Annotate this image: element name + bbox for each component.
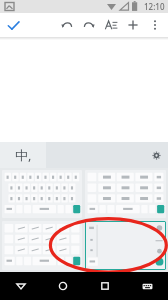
button[interactable]: Formatting bbox=[100, 13, 122, 37]
button[interactable]: Switch keyboard bbox=[126, 272, 168, 300]
button[interactable]: 9-key layout bbox=[85, 170, 166, 218]
button[interactable]: Stroke layout bbox=[2, 221, 82, 270]
button[interactable]: Insert bbox=[122, 13, 144, 37]
button[interactable]: 中, bbox=[0, 142, 46, 168]
button[interactable]: Home bbox=[42, 272, 84, 300]
button[interactable]: Undo bbox=[56, 13, 78, 37]
staticText: 12:10 bbox=[144, 1, 165, 12]
button[interactable]: Redo bbox=[78, 13, 100, 37]
staticText: 中, bbox=[15, 146, 32, 164]
button[interactable]: More options bbox=[144, 13, 166, 37]
button[interactable]: Handwriting layout bbox=[85, 221, 166, 270]
button[interactable]: Done bbox=[0, 13, 26, 37]
button[interactable]: Back bbox=[0, 272, 42, 300]
button[interactable]: QWERTY layout bbox=[2, 170, 82, 218]
button[interactable]: Recent apps bbox=[84, 272, 126, 300]
button[interactable]: Settings bbox=[144, 142, 168, 168]
